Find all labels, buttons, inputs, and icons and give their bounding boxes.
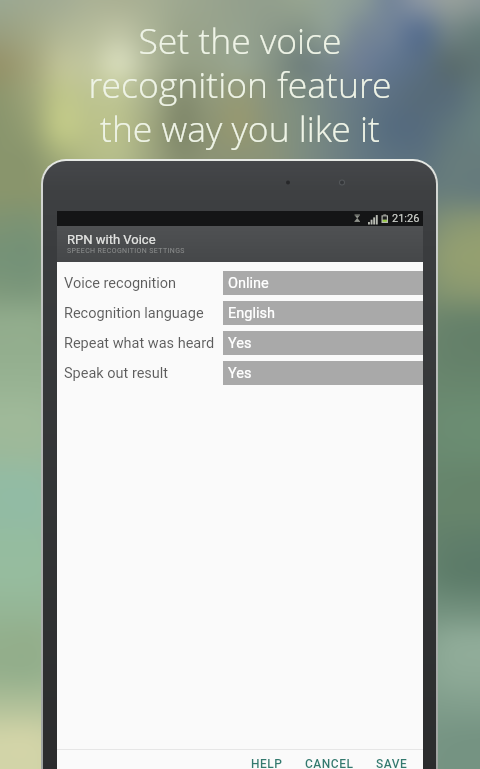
button[interactable]: Recognition language [57,298,423,328]
staticText: English [228,305,275,322]
staticText: HELP [251,757,283,769]
staticText: Voice recognition [64,275,177,292]
staticText: SPEECH RECOGNITION SETTINGS [67,247,185,255]
staticText: Set the voice recognition feature the wa… [0,20,480,152]
staticText: RPN with Voice [67,232,156,247]
staticText: Online [228,275,269,292]
button[interactable]: CANCEL [294,753,365,769]
button[interactable]: Voice recognition [57,268,423,298]
staticText: Recognition language [64,305,204,322]
staticText: CANCEL [305,757,354,769]
staticText: 21:26 [392,212,420,225]
staticText: Repeat what was heard [64,335,215,352]
button[interactable]: Speak out result [57,358,423,388]
staticText: Yes [228,365,252,382]
staticText: SAVE [376,757,408,769]
button[interactable]: HELP [240,753,294,769]
button[interactable]: Repeat what was heard [57,328,423,358]
staticText: Yes [228,335,252,352]
staticText: Speak out result [64,365,169,382]
button[interactable]: SAVE [365,753,419,769]
